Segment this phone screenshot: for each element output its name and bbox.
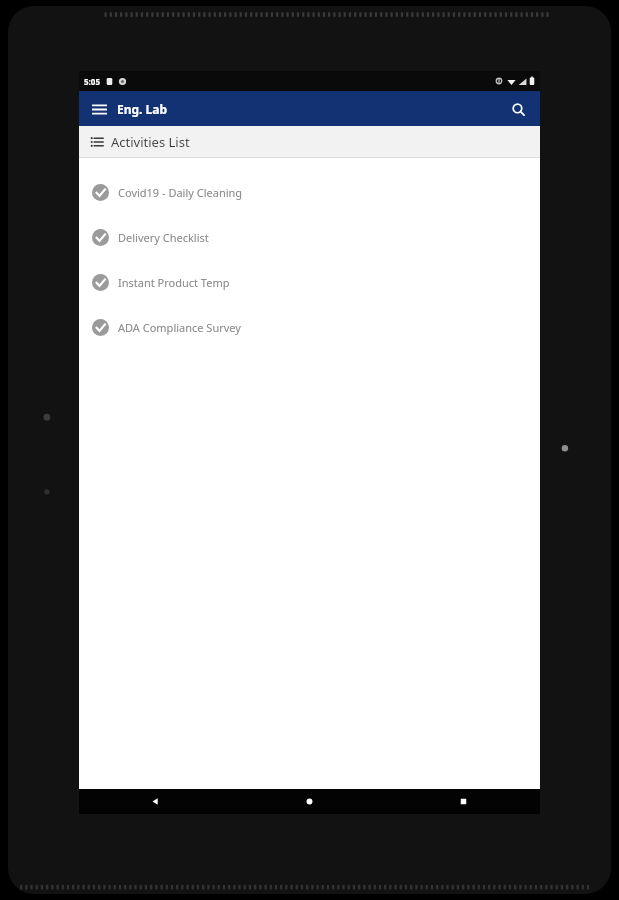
staticText: Covid19 - Daily Cleaning xyxy=(118,185,243,200)
button[interactable]: Delivery Checklist xyxy=(79,215,540,260)
button[interactable]: Recent apps xyxy=(386,789,540,814)
button[interactable]: ADA Compliance Survey xyxy=(79,305,540,350)
staticText: Instant Product Temp xyxy=(118,275,230,290)
staticText: Activities List xyxy=(111,133,190,151)
button[interactable]: Open navigation menu xyxy=(85,95,113,123)
button[interactable]: Instant Product Temp xyxy=(79,260,540,305)
button[interactable]: Covid19 - Daily Cleaning xyxy=(79,170,540,215)
staticText: Eng. Lab xyxy=(117,101,168,117)
button[interactable]: Back xyxy=(79,789,232,814)
staticText: 5:05 xyxy=(84,76,100,87)
button[interactable]: Search xyxy=(504,95,532,123)
staticText: Delivery Checklist xyxy=(118,230,209,245)
button[interactable]: Home xyxy=(232,789,386,814)
button[interactable]: Activities List xyxy=(79,126,540,157)
staticText: ADA Compliance Survey xyxy=(118,320,241,335)
